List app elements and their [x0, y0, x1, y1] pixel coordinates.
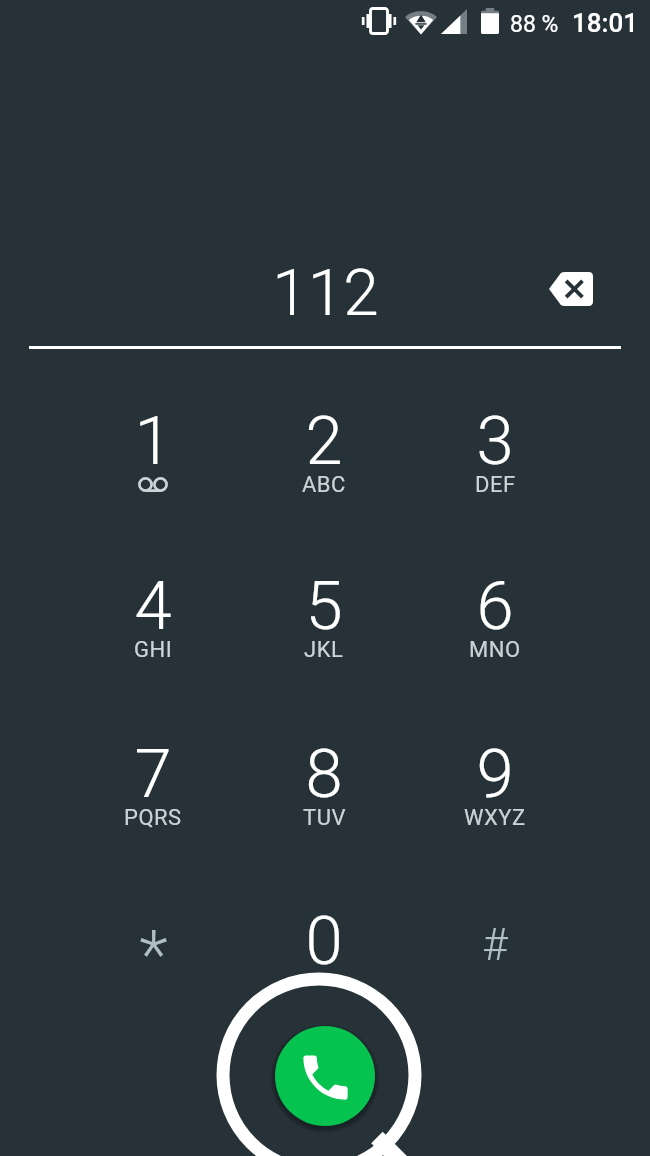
staticText: 9: [476, 735, 514, 814]
staticText: MNO: [469, 637, 521, 663]
staticText: 6: [476, 567, 514, 646]
staticText: WXYZ: [464, 805, 526, 831]
staticText: 4: [134, 567, 172, 646]
staticText: PQRS: [124, 805, 182, 831]
button[interactable]: 6: [410, 548, 580, 698]
staticText: JKL: [304, 637, 344, 663]
button[interactable]: 1: [68, 383, 238, 533]
button[interactable]: 3: [410, 383, 580, 533]
staticText: 2: [305, 402, 343, 481]
staticText: 112: [272, 256, 379, 331]
staticText: 5: [305, 567, 343, 646]
staticText: *: [139, 917, 168, 994]
button[interactable]: 5: [239, 548, 409, 698]
button[interactable]: #: [410, 883, 580, 1033]
button[interactable]: Backspace: [533, 259, 607, 319]
button[interactable]: 9: [410, 716, 580, 866]
staticText: 3: [476, 402, 514, 481]
staticText: 18:01: [572, 8, 639, 38]
staticText: #: [482, 919, 508, 971]
staticText: GHI: [134, 637, 173, 663]
button[interactable]: 4: [68, 548, 238, 698]
button[interactable]: 7: [68, 716, 238, 866]
button[interactable]: 0: [239, 883, 409, 1033]
staticText: 8: [305, 735, 343, 814]
staticText: ABC: [302, 472, 346, 498]
staticText: 1: [134, 402, 172, 481]
staticText: DEF: [475, 472, 516, 498]
button[interactable]: 8: [239, 716, 409, 866]
staticText: 88 %: [510, 11, 559, 38]
staticText: 0: [305, 902, 343, 981]
staticText: 7: [134, 735, 172, 814]
staticText: TUV: [303, 805, 346, 831]
button[interactable]: 2: [239, 383, 409, 533]
button[interactable]: Call: [275, 1026, 375, 1126]
button[interactable]: *: [68, 883, 238, 1033]
